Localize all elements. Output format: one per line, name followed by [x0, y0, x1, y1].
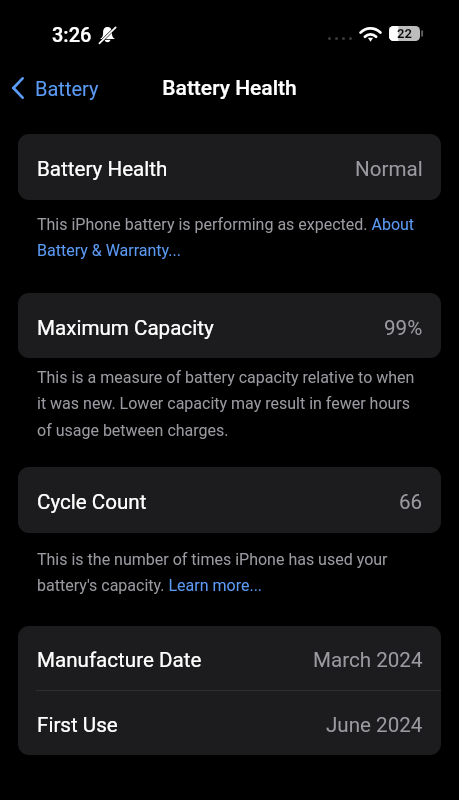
button[interactable]: Battery	[4, 70, 111, 105]
other: Silent mode	[99, 26, 116, 44]
staticText: 3:26	[52, 23, 92, 46]
staticText: This is a measure of battery capacity re…	[37, 368, 421, 440]
staticText: First Use	[37, 713, 118, 737]
other: Battery 22 percent	[389, 26, 424, 41]
staticText: Maximum Capacity	[37, 316, 214, 340]
staticText: Battery	[35, 77, 99, 100]
button[interactable]: Manufacture Date	[18, 626, 441, 690]
staticText: Battery Health	[37, 157, 168, 181]
staticText: This is the number of times iPhone has u…	[37, 550, 421, 595]
button[interactable]: First Use	[18, 691, 441, 755]
staticText: March 2024	[313, 648, 423, 672]
staticText: Cycle Count	[37, 490, 147, 514]
staticText: 66	[399, 490, 423, 514]
button[interactable]: Maximum Capacity	[18, 293, 441, 358]
staticText: This iPhone battery is performing as exp…	[37, 215, 421, 260]
staticText: 22	[397, 26, 412, 41]
staticText: 99%	[384, 316, 423, 340]
button[interactable]: Cycle Count	[18, 467, 441, 533]
button[interactable]: Battery Health	[18, 134, 441, 200]
staticText: Battery Health	[0, 76, 459, 101]
staticText: June 2024	[326, 713, 423, 737]
staticText: Manufacture Date	[37, 648, 202, 672]
other: Wi-Fi	[360, 25, 381, 42]
staticText: Normal	[355, 157, 423, 181]
